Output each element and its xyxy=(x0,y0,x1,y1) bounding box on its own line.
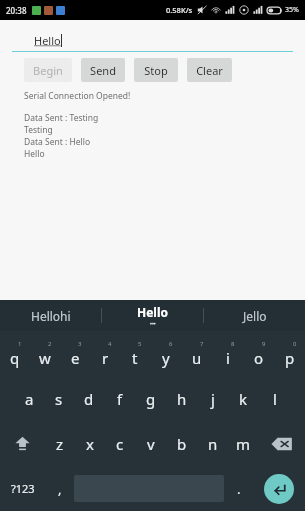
staticText: Hello xyxy=(137,304,168,320)
staticText: Data Sent : Testing xyxy=(24,112,99,124)
staticText: Begin xyxy=(33,63,63,78)
button[interactable]: 2 xyxy=(30,331,60,376)
staticText: k xyxy=(239,389,248,409)
staticText: Stop xyxy=(144,63,168,78)
staticText: 7 xyxy=(200,340,204,348)
staticText: j xyxy=(211,389,215,409)
button[interactable]: m xyxy=(228,421,259,466)
button[interactable]: 9 xyxy=(243,331,274,376)
staticText: e xyxy=(71,348,80,368)
button[interactable]: k xyxy=(228,376,259,421)
staticText: , xyxy=(58,480,62,498)
staticText: 0 xyxy=(293,340,297,348)
staticText: l xyxy=(273,389,277,409)
staticText: x xyxy=(86,434,94,454)
staticText: w xyxy=(39,348,51,368)
button[interactable]: g xyxy=(135,376,166,421)
button[interactable]: n xyxy=(197,421,228,466)
staticText: i xyxy=(226,348,230,368)
staticText: 0.58K/s xyxy=(166,5,193,15)
button[interactable]: 1 xyxy=(0,331,30,376)
button[interactable]: 0 xyxy=(274,331,305,376)
staticText: 2 xyxy=(48,340,52,348)
staticText: q xyxy=(10,348,20,368)
staticText: 8 xyxy=(231,340,235,348)
staticText: Hello xyxy=(24,148,45,160)
staticText: h xyxy=(177,389,187,409)
staticText: Testing xyxy=(24,124,53,136)
button[interactable]: . xyxy=(224,466,253,511)
button[interactable]: 4 xyxy=(90,331,120,376)
button[interactable]: Hello xyxy=(12,28,293,52)
staticText: t xyxy=(132,348,138,368)
button[interactable]: a xyxy=(14,376,44,421)
button[interactable]: Stop xyxy=(134,58,178,82)
staticText: 9 xyxy=(262,340,266,348)
staticText: . xyxy=(237,480,241,498)
staticText: g xyxy=(146,389,156,409)
staticText: p xyxy=(285,348,295,368)
staticText: 35% xyxy=(285,5,299,15)
button[interactable]: v xyxy=(135,421,166,466)
staticText: a xyxy=(25,389,34,409)
button[interactable]: Shift xyxy=(0,421,45,466)
button[interactable]: ?123 xyxy=(0,466,45,511)
staticText: Clear xyxy=(196,63,223,78)
staticText: v xyxy=(147,434,155,454)
staticText: s xyxy=(55,389,63,409)
staticText: Hellohi xyxy=(31,308,71,324)
staticText: Hello xyxy=(34,33,61,48)
button[interactable]: Enter xyxy=(264,474,294,504)
button[interactable]: Hello xyxy=(102,300,203,331)
staticText: d xyxy=(84,389,94,409)
staticText: n xyxy=(208,434,218,454)
staticText: 6 xyxy=(169,340,173,348)
staticText: o xyxy=(254,348,264,368)
button[interactable]: 5 xyxy=(120,331,150,376)
button[interactable]: s xyxy=(44,376,74,421)
button[interactable]: d xyxy=(74,376,104,421)
button[interactable]: 7 xyxy=(181,331,212,376)
button[interactable]: 8 xyxy=(212,331,243,376)
staticText: b xyxy=(177,434,187,454)
button[interactable]: x xyxy=(75,421,105,466)
staticText: 4 xyxy=(108,340,112,348)
staticText: Serial Connection Opened! xyxy=(24,90,131,102)
staticText: Data Sent : Hello xyxy=(24,136,91,148)
staticText: 20:38 xyxy=(6,5,27,16)
staticText: u xyxy=(192,348,202,368)
button[interactable]: Send xyxy=(81,58,125,82)
button[interactable]: 3 xyxy=(60,331,90,376)
staticText: 5 xyxy=(138,340,142,348)
button[interactable]: Jello xyxy=(204,300,305,331)
button[interactable]: z xyxy=(45,421,75,466)
button[interactable]: Hellohi xyxy=(0,300,101,331)
button[interactable]: l xyxy=(259,376,290,421)
staticText: r xyxy=(102,348,109,368)
staticText: ?123 xyxy=(11,481,35,496)
button[interactable]: , xyxy=(45,466,74,511)
staticText: 1 xyxy=(18,340,22,348)
button[interactable]: f xyxy=(104,376,135,421)
button[interactable]: c xyxy=(105,421,135,466)
button[interactable]: Backspace xyxy=(259,421,305,466)
staticText: Jello xyxy=(243,308,267,324)
staticText: f xyxy=(117,389,123,409)
staticText: z xyxy=(56,434,64,454)
staticText: Send xyxy=(90,63,116,78)
button[interactable]: 6 xyxy=(150,331,181,376)
staticText: c xyxy=(116,434,124,454)
staticText: ••• xyxy=(150,321,156,328)
button[interactable]: Clear xyxy=(187,58,232,82)
staticText: y xyxy=(162,348,170,368)
button[interactable]: b xyxy=(166,421,197,466)
button[interactable]: h xyxy=(166,376,197,421)
button[interactable]: j xyxy=(197,376,228,421)
staticText: 3 xyxy=(78,340,82,348)
button[interactable]: Begin xyxy=(24,58,72,82)
staticText: m xyxy=(236,434,251,454)
